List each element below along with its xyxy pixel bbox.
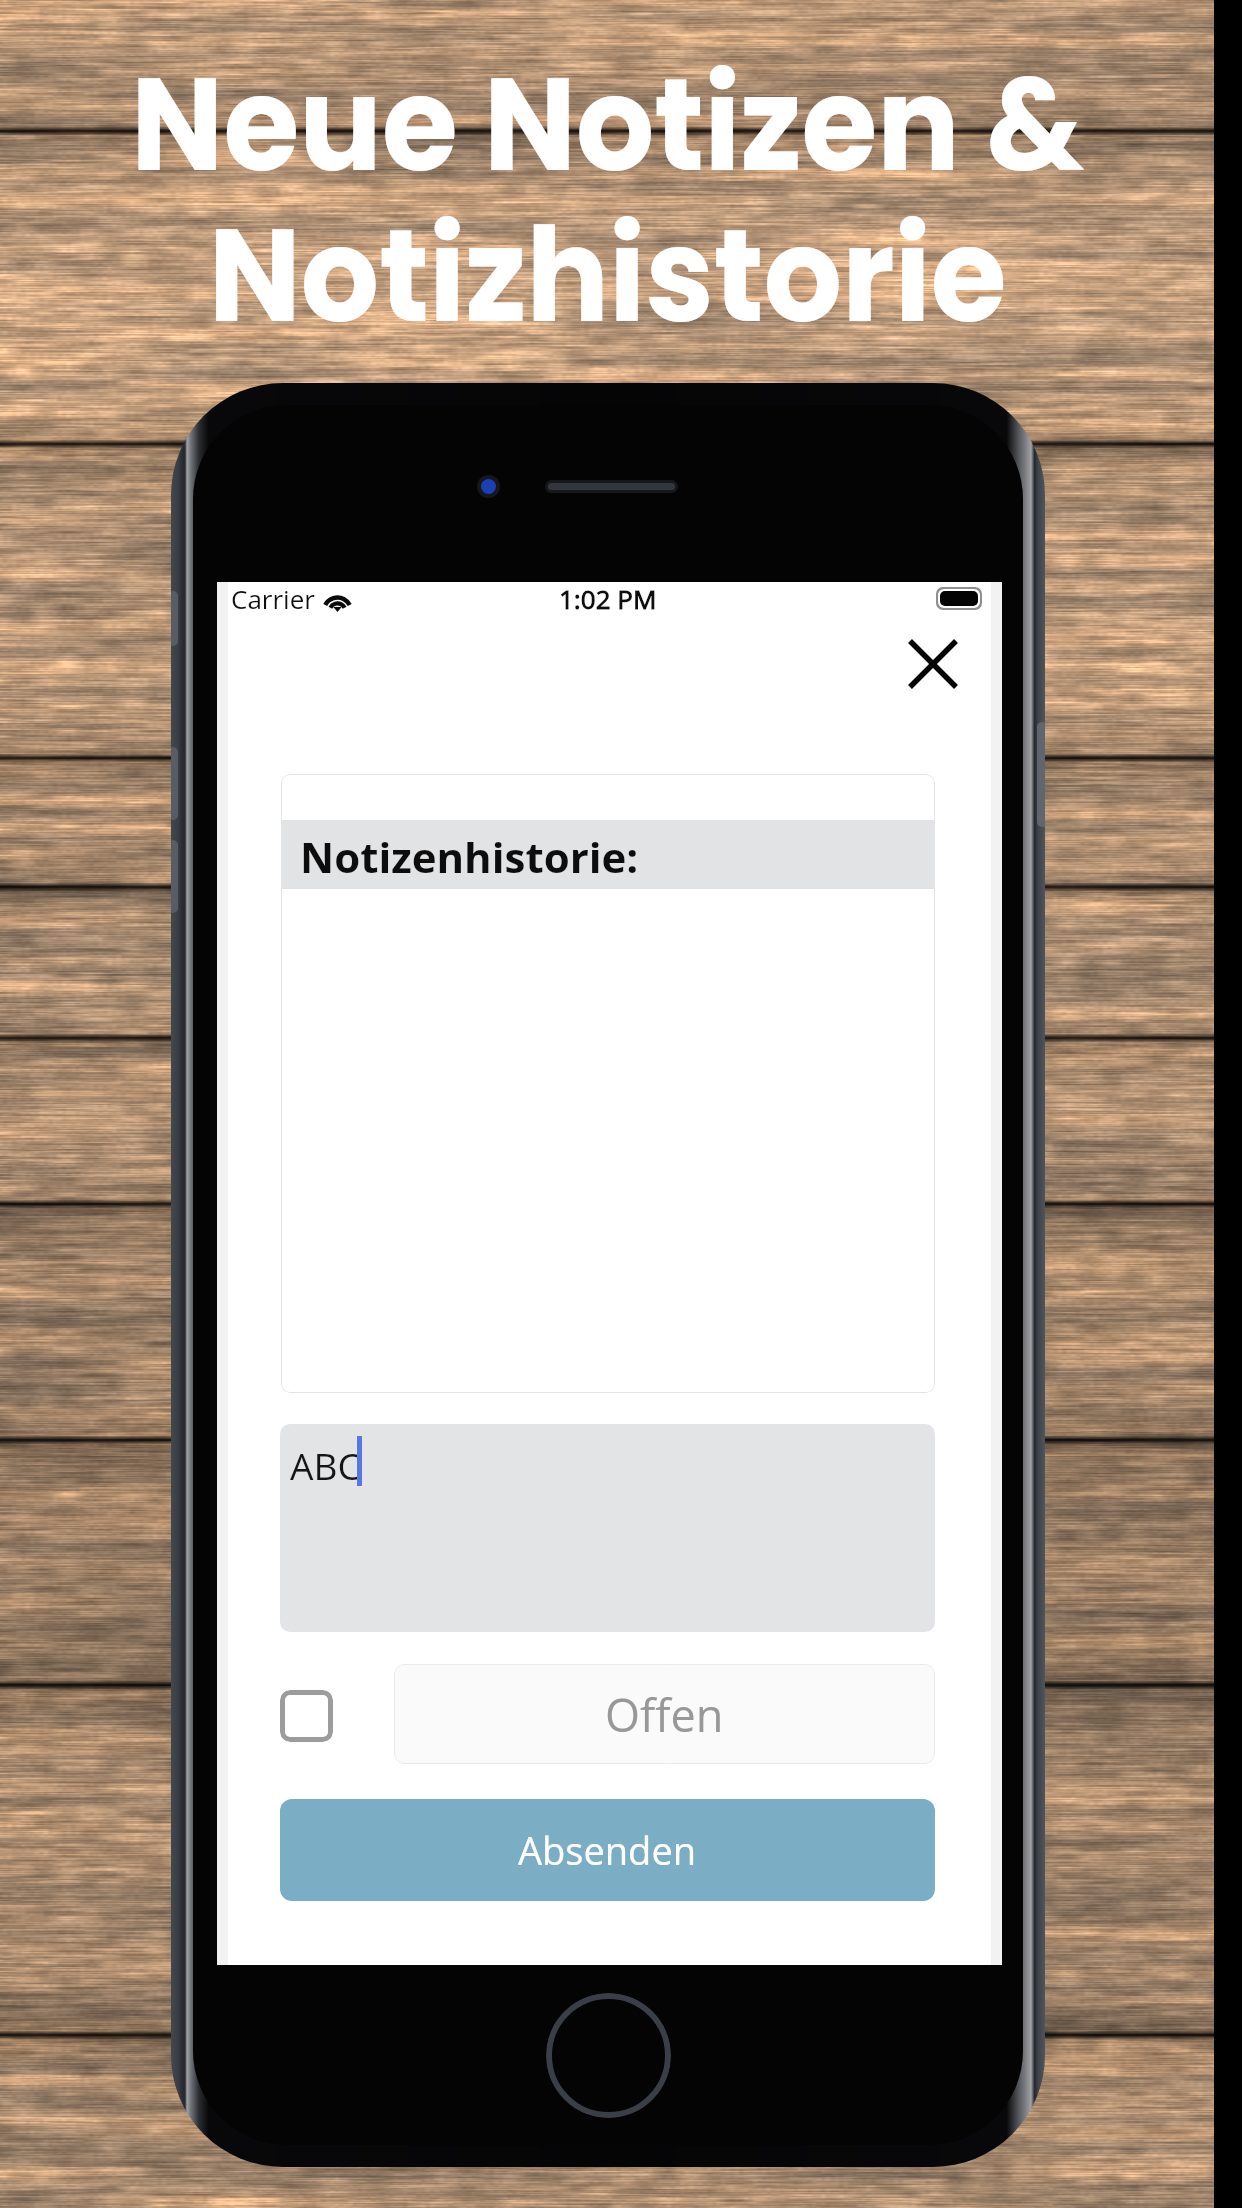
staticText: Carrier bbox=[231, 581, 315, 616]
button[interactable]: Offen bbox=[394, 1664, 935, 1764]
button[interactable]: Absenden bbox=[280, 1799, 935, 1901]
staticText: Notizenhistorie: bbox=[300, 828, 639, 885]
staticText: Notizhistorie bbox=[208, 183, 1007, 366]
button[interactable]: Checkbox bbox=[280, 1690, 333, 1742]
staticText: Offen bbox=[605, 1684, 724, 1745]
staticText: 1:02 PM bbox=[559, 581, 657, 616]
staticText: Absenden bbox=[518, 1824, 697, 1876]
button[interactable]: ABC bbox=[280, 1424, 935, 1632]
button[interactable]: Close bbox=[883, 614, 983, 714]
staticText: Neue Notizen & bbox=[130, 32, 1084, 215]
staticText: ABC bbox=[290, 1440, 361, 1490]
